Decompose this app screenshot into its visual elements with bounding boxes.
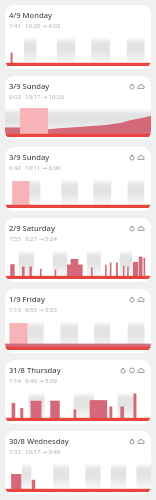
staticText: 4/9 Monday <box>9 10 53 20</box>
other: Home <box>137 153 145 161</box>
button[interactable]: 1/9 Friday <box>5 289 151 353</box>
staticText: 3/9 Sunday <box>9 152 50 162</box>
button[interactable]: 31/8 Thursday <box>5 360 151 424</box>
other: Snoring <box>119 366 127 374</box>
other: Snoring <box>128 82 136 90</box>
staticText: 1/9 Friday <box>9 294 45 304</box>
staticText: 9:27 → 5:24 <box>25 235 57 243</box>
staticText: 7:15 <box>9 306 21 314</box>
staticText: 10:20 → 6:02 <box>25 22 61 30</box>
other: Sleep phase <box>128 366 136 374</box>
button[interactable]: 2/9 Saturday <box>5 218 151 282</box>
other: Home <box>137 82 145 90</box>
staticText: 10:17 → 10:20 <box>25 93 64 101</box>
other: Snoring <box>128 295 136 303</box>
staticText: 0:02 <box>9 93 21 101</box>
button[interactable]: 3/9 Sunday <box>5 76 151 140</box>
other: Home <box>137 224 145 232</box>
staticText: 7:41 <box>9 22 21 30</box>
other: Home <box>137 366 145 374</box>
staticText: 9:55 → 5:53 <box>25 306 57 314</box>
button[interactable]: 3/9 Sunday <box>5 147 151 211</box>
staticText: 7:14 <box>9 377 21 385</box>
staticText: 7:55 <box>9 235 21 243</box>
other: Snoring <box>128 437 136 445</box>
other: Home <box>137 295 145 303</box>
staticText: 6:42 <box>9 164 21 172</box>
staticText: 7:32 <box>9 448 21 456</box>
staticText: 9:49 → 5:09 <box>25 377 57 385</box>
other: Home <box>137 437 145 445</box>
staticText: 10:17 → 5:49 <box>25 448 61 456</box>
staticText: 10:11 → 6:00 <box>25 164 61 172</box>
staticText: 2/9 Saturday <box>9 223 55 233</box>
button[interactable]: 4/9 Monday <box>5 5 151 69</box>
staticText: 30/8 Wednesday <box>9 436 69 446</box>
staticText: 31/8 Thursday <box>9 365 61 375</box>
other: Snoring <box>128 224 136 232</box>
staticText: 3/9 Sunday <box>9 81 50 91</box>
other: Snoring <box>128 153 136 161</box>
button[interactable]: 30/8 Wednesday <box>5 431 151 495</box>
